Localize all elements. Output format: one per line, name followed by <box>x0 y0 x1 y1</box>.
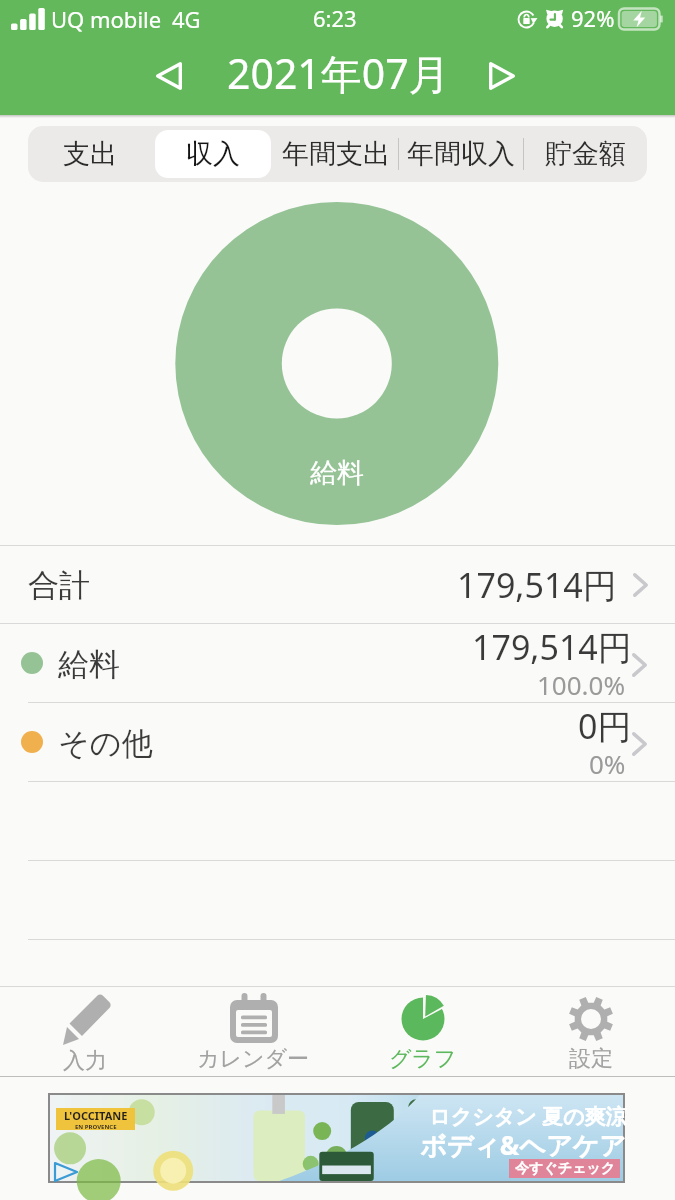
staticText: 179,514円 <box>457 562 617 608</box>
staticText: 0円 <box>578 703 632 749</box>
staticText: 給料 <box>58 645 120 684</box>
staticText: 貯金額 <box>545 137 626 171</box>
button[interactable]: その他 <box>0 703 675 781</box>
button[interactable]: グラフ <box>338 987 507 1076</box>
staticText: ロクシタン 夏の爽涼 <box>429 1102 627 1131</box>
button[interactable]: 設定 <box>506 987 675 1076</box>
staticText: UQ mobile <box>51 4 162 34</box>
button[interactable]: 年間収入 <box>402 130 520 178</box>
staticText: 収入 <box>186 137 240 171</box>
staticText: ボディ&ヘアケア <box>420 1127 626 1163</box>
button[interactable]: Previous month <box>143 50 195 102</box>
staticText: 2021年07月 <box>227 45 450 101</box>
staticText: 支出 <box>63 137 117 171</box>
staticText: 4G <box>172 4 201 34</box>
staticText: 6:23 <box>313 3 357 33</box>
staticText: 年間収入 <box>407 137 515 171</box>
staticText: 今すぐチェック <box>515 1160 615 1178</box>
staticText: 設定 <box>569 1045 613 1073</box>
staticText: 年間支出 <box>282 137 390 171</box>
staticText: 179,514円 <box>472 624 632 670</box>
button[interactable]: 合計 <box>0 546 675 623</box>
staticText: EN PROVENCE <box>75 1123 117 1130</box>
button[interactable]: 貯金額 <box>527 130 644 178</box>
staticText: その他 <box>58 724 153 763</box>
staticText: 入力 <box>63 1047 107 1075</box>
staticText: 100.0% <box>537 667 626 702</box>
staticText: グラフ <box>389 1045 457 1073</box>
button[interactable]: 年間支出 <box>277 130 395 178</box>
staticText: 92% <box>571 3 615 33</box>
staticText: 合計 <box>28 566 90 605</box>
button[interactable]: Advertisement <box>50 1095 623 1181</box>
button[interactable]: 給料 <box>0 624 675 702</box>
staticText: 給料 <box>310 456 364 490</box>
button[interactable]: 支出 <box>31 130 149 178</box>
button[interactable]: 収入 <box>155 130 271 178</box>
staticText: カレンダー <box>197 1045 310 1073</box>
staticText: L'OCCITANE <box>64 1108 128 1123</box>
button[interactable]: Next month <box>476 50 528 102</box>
staticText: 0% <box>589 746 626 781</box>
button[interactable]: カレンダー <box>169 987 338 1076</box>
button[interactable]: 入力 <box>0 987 169 1076</box>
